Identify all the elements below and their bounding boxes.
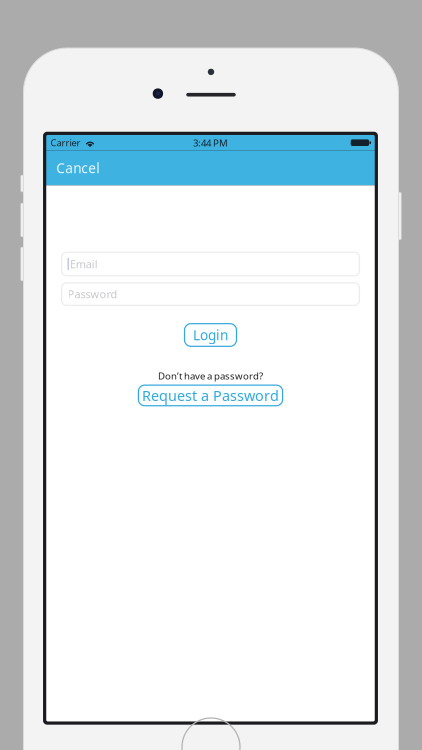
staticText: Password bbox=[68, 287, 118, 302]
button[interactable]: Cancel bbox=[46, 150, 110, 185]
staticText: Carrier bbox=[50, 136, 80, 149]
staticText: Email bbox=[70, 257, 98, 271]
staticText: Don’t have a password? bbox=[158, 369, 263, 382]
staticText: Cancel bbox=[56, 159, 100, 177]
staticText: 3:44 PM bbox=[193, 136, 228, 149]
button[interactable]: Request a Password bbox=[138, 385, 283, 406]
staticText: Login bbox=[193, 326, 228, 344]
button[interactable]: Login bbox=[184, 324, 236, 346]
staticText: Request a Password bbox=[142, 386, 279, 405]
